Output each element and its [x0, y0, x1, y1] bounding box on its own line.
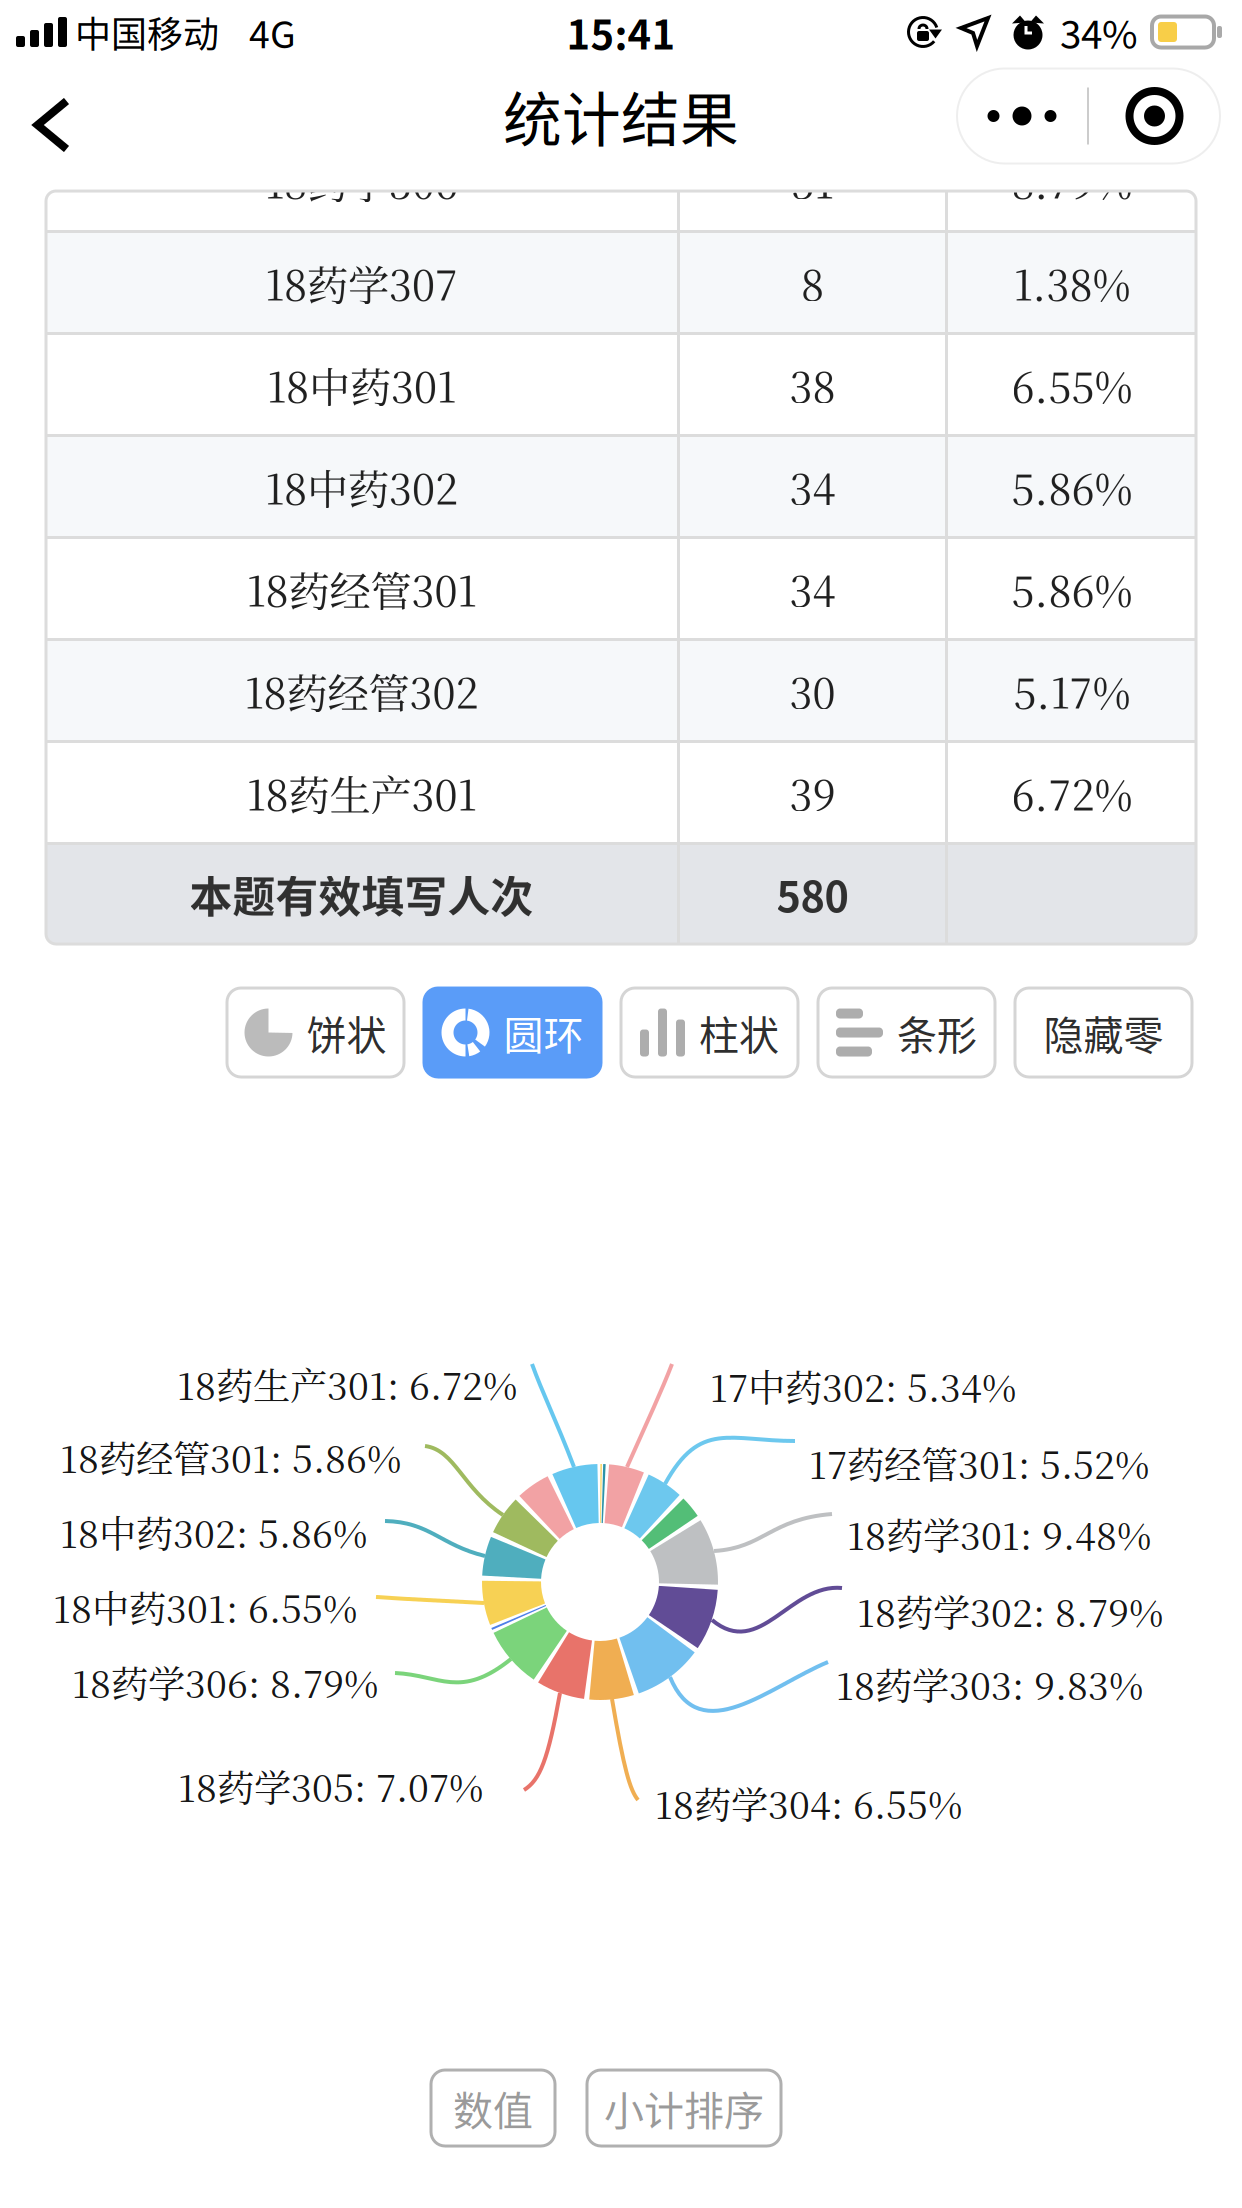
staticText: 18中药301	[267, 355, 456, 414]
staticText: 4G	[249, 5, 296, 59]
button[interactable]: 小计排序	[587, 2070, 781, 2146]
staticText: 8	[801, 253, 824, 312]
staticText: 本题有效填写人次	[189, 863, 533, 925]
staticText: 18药学302: 8.79%	[857, 1584, 1163, 1638]
staticText: 15:41	[566, 3, 675, 61]
staticText: 饼状	[306, 1003, 386, 1061]
button[interactable]: 饼状	[227, 988, 404, 1077]
staticText: 8.79%	[1011, 151, 1132, 210]
staticText: 18药生产301: 6.72%	[177, 1357, 517, 1411]
staticText: 18药经管301	[246, 559, 476, 618]
staticText: 17药经管301: 5.52%	[809, 1436, 1149, 1490]
staticText: 17中药302: 5.34%	[710, 1359, 1016, 1413]
staticText: 18药学301: 9.48%	[847, 1507, 1151, 1561]
staticText: 18药学305: 7.07%	[178, 1759, 483, 1813]
staticText: 580	[776, 864, 848, 924]
staticText: 34	[789, 559, 835, 618]
staticText: 柱状	[699, 1003, 779, 1061]
staticText: 18药学306	[265, 151, 458, 210]
staticText: 5.86%	[1011, 559, 1132, 618]
button[interactable]: More options	[957, 68, 1220, 163]
staticText: 39	[789, 763, 835, 822]
staticText: 统计结果	[503, 73, 739, 158]
staticText: 18药学307	[265, 253, 458, 312]
staticText: 18药学304: 6.55%	[655, 1776, 962, 1830]
staticText: 5.86%	[1011, 457, 1132, 516]
staticText: 18中药302: 5.86%	[60, 1505, 367, 1559]
button[interactable]: 数值	[431, 2070, 555, 2146]
staticText: 18中药301: 6.55%	[53, 1580, 357, 1634]
staticText: 18药经管302	[244, 661, 478, 720]
button[interactable]: Back	[12, 68, 92, 164]
button[interactable]: 条形	[818, 988, 995, 1077]
staticText: 38	[789, 355, 835, 414]
staticText: 圆环	[503, 1003, 583, 1061]
staticText: 5.17%	[1013, 661, 1130, 720]
button[interactable]: 圆环	[424, 988, 601, 1077]
button[interactable]: 隐藏零	[1015, 988, 1192, 1077]
staticText: 51	[791, 151, 833, 210]
staticText: 小计排序	[604, 2079, 764, 2137]
staticText: 1.38%	[1013, 253, 1130, 312]
staticText: 18中药302	[265, 457, 458, 516]
staticText: 34%	[1060, 4, 1138, 60]
staticText: 34	[789, 457, 835, 516]
staticText: 18药生产301	[246, 763, 476, 822]
staticText: 18药学303: 9.83%	[836, 1657, 1143, 1711]
staticText: 条形	[897, 1003, 977, 1061]
staticText: 数值	[453, 2079, 533, 2137]
staticText: 6.72%	[1011, 763, 1132, 822]
staticText: 30	[789, 661, 835, 720]
staticText: 18药经管301: 5.86%	[60, 1430, 401, 1484]
staticText: 18药学306: 8.79%	[72, 1655, 378, 1709]
staticText: 6.55%	[1011, 355, 1132, 414]
staticText: 隐藏零	[1043, 1003, 1163, 1061]
staticText: 中国移动	[75, 6, 219, 58]
button[interactable]: 柱状	[621, 988, 798, 1077]
